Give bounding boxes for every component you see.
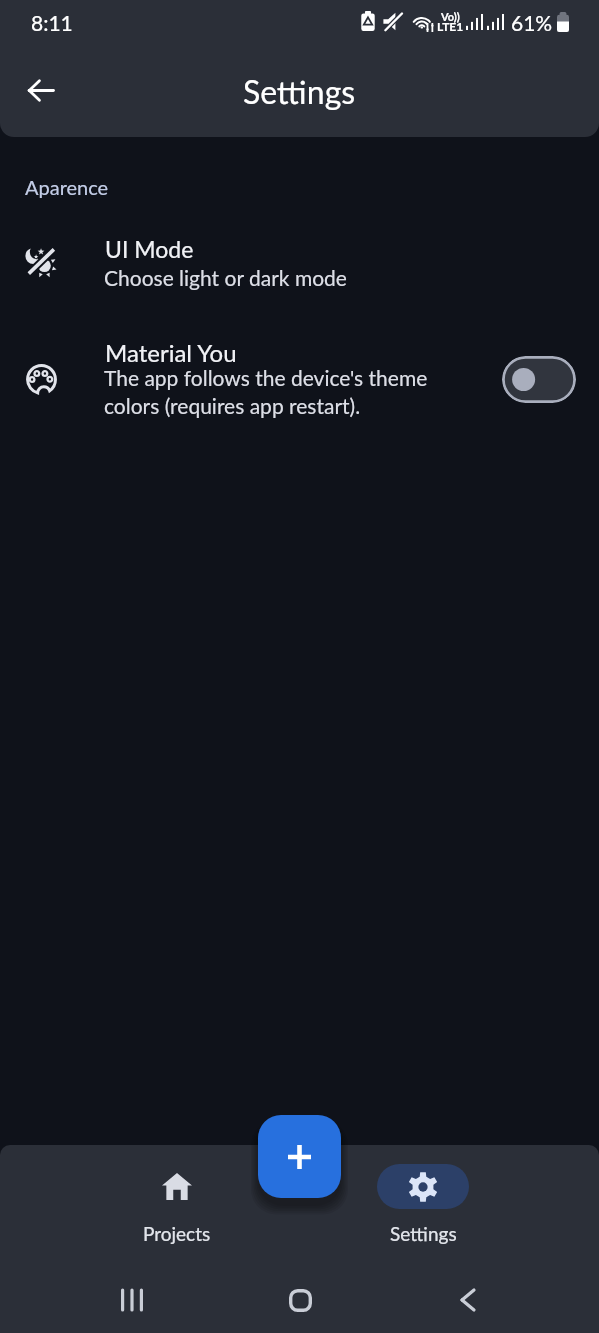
button[interactable]: Home [278,1278,322,1322]
staticText: Settings [243,72,356,110]
staticText: 8:11 [31,10,73,35]
button[interactable]: Recents [110,1278,154,1322]
button[interactable]: UI Mode [0,222,599,302]
button[interactable]: Add [258,1115,341,1198]
button[interactable]: Back [20,69,62,111]
staticText: LTE1 [437,19,464,33]
staticText: 61% [511,10,553,35]
staticText: Aparence [25,175,109,199]
staticText: The app follows the device's theme color… [104,365,428,419]
staticText: Choose light or dark mode [104,265,347,290]
button[interactable]: Material You [0,328,599,438]
button[interactable]: Material You toggle [502,356,576,403]
staticText: Projects [143,1222,211,1244]
button[interactable]: Back [446,1278,490,1322]
staticText: UI Mode [105,235,194,263]
button[interactable]: Projects [132,1164,222,1244]
staticText: Vo)) [441,10,460,23]
staticText: Settings [390,1222,457,1244]
staticText: Material You [105,338,237,367]
button[interactable]: Settings [377,1164,469,1244]
